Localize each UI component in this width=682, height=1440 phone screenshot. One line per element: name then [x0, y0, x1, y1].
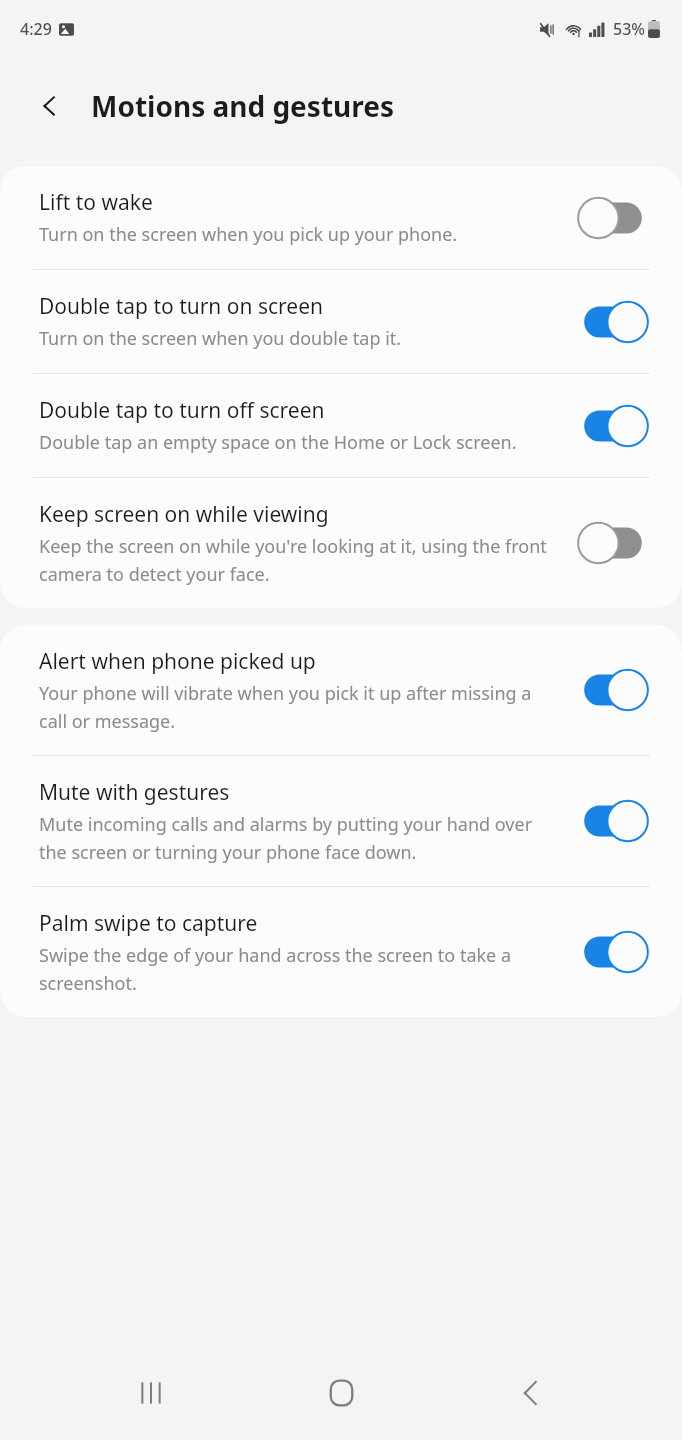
button[interactable]: Double tap to turn off screen	[0, 374, 682, 477]
staticText: Double tap an empty space on the Home or…	[39, 430, 517, 455]
button[interactable]: Recent apps	[112, 1354, 190, 1432]
staticText: Lift to wake	[39, 188, 153, 217]
button[interactable]: Keep screen on while viewing, off	[574, 519, 652, 567]
button[interactable]: Palm swipe to capture	[0, 887, 682, 1017]
staticText: Palm swipe to capture	[39, 909, 258, 938]
staticText: Double tap to turn off screen	[39, 396, 325, 425]
button[interactable]: Alert when phone picked up	[0, 625, 682, 755]
button[interactable]: Double tap to turn on screen	[0, 270, 682, 373]
staticText: 4:29	[20, 18, 52, 40]
staticText: Mute with gestures	[39, 778, 230, 807]
staticText: Motions and gestures	[91, 87, 394, 125]
staticText: Keep screen on while viewing	[39, 500, 329, 529]
staticText: Double tap to turn on screen	[39, 292, 324, 321]
button[interactable]: Keep screen on while viewing	[0, 478, 682, 608]
button[interactable]: Lift to wake, off	[574, 194, 652, 242]
button[interactable]: Double tap to turn off screen, on	[574, 402, 652, 450]
staticText: Turn on the screen when you pick up your…	[39, 222, 458, 247]
staticText: Turn on the screen when you double tap i…	[39, 326, 402, 351]
button[interactable]: Mute with gestures, on	[574, 797, 652, 845]
staticText: Mute incoming calls and alarms by puttin…	[39, 812, 558, 864]
button[interactable]: Lift to wake	[0, 166, 682, 269]
button[interactable]: Back	[492, 1354, 570, 1432]
staticText: 53%	[613, 18, 645, 40]
staticText: Alert when phone picked up	[39, 647, 316, 676]
button[interactable]: Back	[28, 84, 72, 128]
staticText: Your phone will vibrate when you pick it…	[39, 681, 558, 733]
button[interactable]: Home	[302, 1354, 380, 1432]
button[interactable]: Mute with gestures	[0, 756, 682, 886]
button[interactable]: Alert when phone picked up, on	[574, 666, 652, 714]
button[interactable]: Palm swipe to capture, on	[574, 928, 652, 976]
staticText: Swipe the edge of your hand across the s…	[39, 943, 558, 995]
button[interactable]: Double tap to turn on screen, on	[574, 298, 652, 346]
staticText: Keep the screen on while you're looking …	[39, 534, 558, 586]
